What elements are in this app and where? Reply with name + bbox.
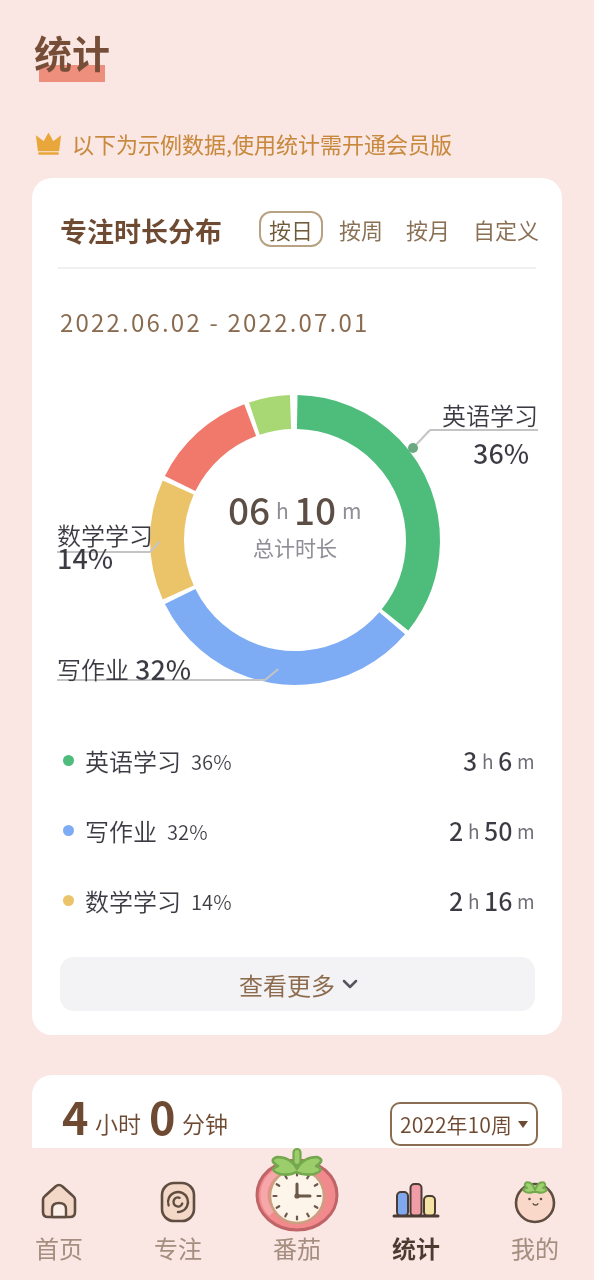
button[interactable]: 番茄 [237,1148,356,1280]
staticText: m [517,747,535,775]
staticText: 以下为示例数据,使用统计需开通会员版 [72,127,453,159]
button[interactable]: 自定义 [471,211,542,247]
staticText: 番茄 [273,1230,321,1265]
staticText: 按日 [269,213,314,245]
staticText: m [517,887,535,915]
button[interactable]: 以下为示例数据,使用统计需开通会员版 [36,127,453,159]
staticText: 写作业 [57,651,135,686]
staticText: 14% [57,538,114,577]
staticText: 小时 [95,1106,141,1139]
button[interactable]: 查看更多 [60,957,535,1011]
staticText: 我的 [511,1230,559,1265]
staticText: 32% [135,649,192,688]
button[interactable]: 2022年10周 [390,1102,538,1146]
staticText: 首页 [35,1230,83,1265]
staticText: m [342,495,362,525]
staticText: 英语学习 [85,743,181,778]
staticText: 2022.06.02 - 2022.07.01 [60,304,370,339]
staticText: 总计时长 [195,532,395,562]
staticText: h [482,747,494,775]
staticText: 查看更多 [239,967,335,1002]
button[interactable]: 我的 [475,1148,594,1280]
button[interactable]: 首页 [0,1148,118,1280]
staticText: m [517,817,535,845]
staticText: 2022年10周 [400,1109,512,1139]
staticText: 按月 [406,213,451,245]
staticText: 数学学习 [57,517,153,552]
button[interactable]: 按周 [337,211,386,247]
staticText: 06 [228,482,271,528]
staticText: 统计 [34,24,111,79]
staticText: h [276,495,289,525]
staticText: 2 [449,882,464,918]
staticText: 按周 [339,213,384,245]
button[interactable]: 专注 [118,1148,237,1280]
staticText: 0 [149,1083,176,1148]
staticText: 6 [498,742,513,778]
staticText: 36% [191,747,232,776]
button[interactable]: 按日 [259,211,323,247]
staticText: 16 [484,882,513,918]
staticText: 英语学习 [442,397,538,432]
staticText: 自定义 [473,213,540,245]
staticText: 2 [449,812,464,848]
button[interactable]: 统计 [356,1148,475,1280]
staticText: 专注 [154,1230,202,1265]
staticText: 32% [167,817,208,846]
staticText: 10 [294,482,337,528]
staticText: 36% [473,433,530,472]
staticText: 专注时长分布 [60,211,222,250]
staticText: 写作业 [85,813,157,848]
staticText: h [468,817,480,845]
staticText: 50 [484,812,513,848]
button[interactable]: 按月 [404,211,453,247]
staticText: 数学学习 [85,883,181,918]
staticText: 14% [191,887,232,916]
staticText: h [468,887,480,915]
staticText: 4 [62,1083,89,1148]
staticText: 3 [463,742,478,778]
staticText: 分钟 [182,1106,228,1139]
staticText: 统计 [392,1230,440,1265]
